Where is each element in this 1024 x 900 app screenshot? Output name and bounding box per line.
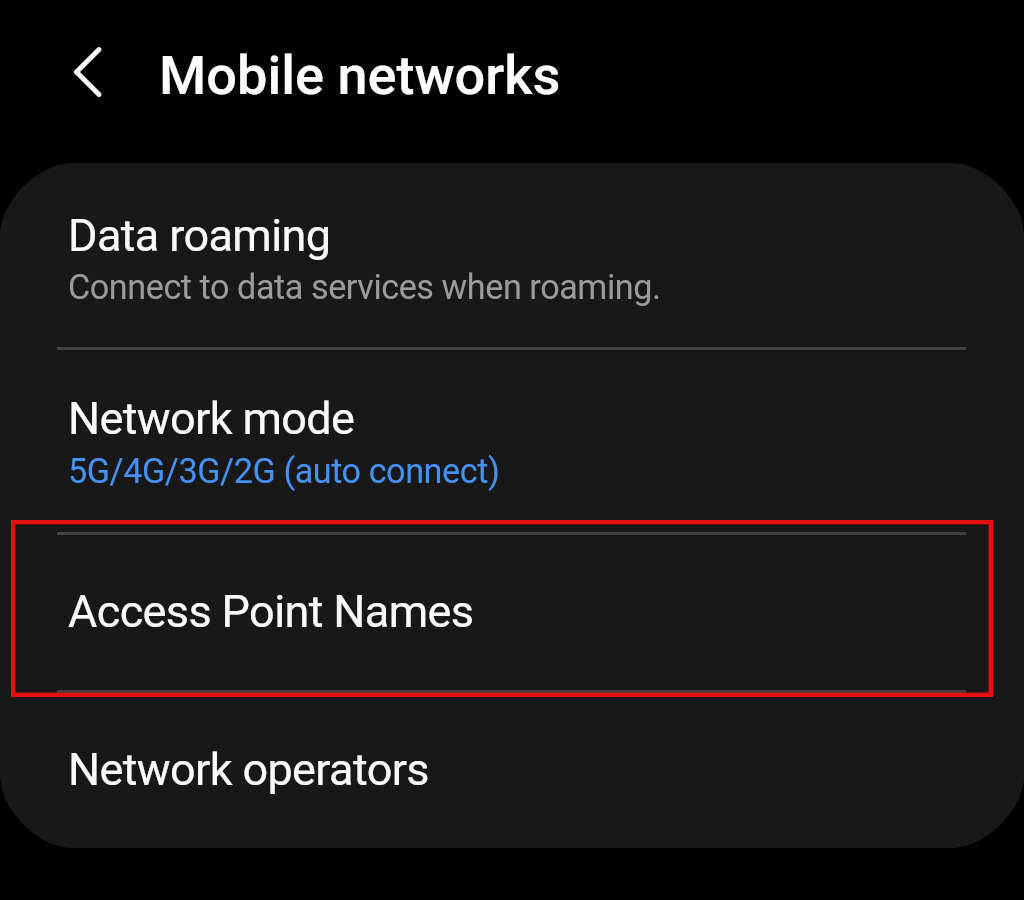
- staticText: Network mode: [68, 392, 355, 445]
- staticText: Mobile networks: [159, 44, 561, 107]
- staticText: Access Point Names: [68, 585, 474, 638]
- staticText: Connect to data services when roaming.: [68, 267, 661, 307]
- button[interactable]: Data roaming: [0, 163, 1024, 347]
- button[interactable]: Access Point Names: [0, 535, 1024, 691]
- staticText: Network operators: [68, 743, 429, 796]
- button[interactable]: Back: [55, 39, 121, 105]
- button[interactable]: Network operators: [0, 693, 1024, 848]
- staticText: 5G/4G/3G/2G (auto connect): [68, 451, 500, 491]
- staticText: Data roaming: [68, 209, 331, 262]
- button[interactable]: Network mode: [0, 350, 1024, 532]
